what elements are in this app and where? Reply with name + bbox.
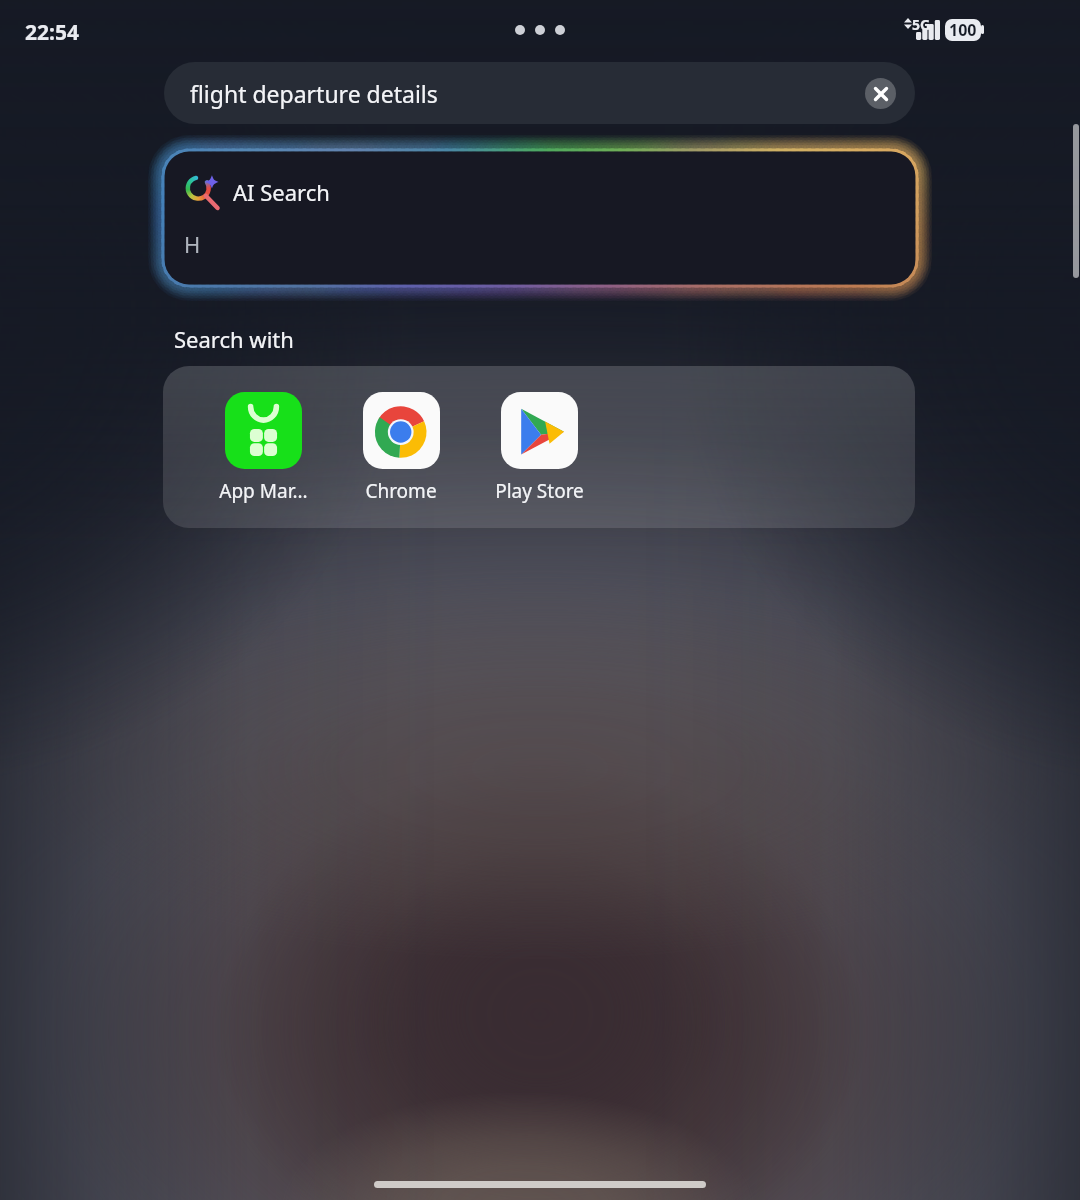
staticText: H bbox=[184, 229, 201, 259]
button[interactable]: flight departure details bbox=[164, 62, 915, 124]
staticText: Chrome bbox=[365, 478, 437, 504]
staticText: 100 bbox=[949, 19, 977, 41]
button[interactable]: Chrome bbox=[332, 392, 470, 504]
button[interactable]: AI Search bbox=[155, 142, 925, 294]
staticText: Search with bbox=[174, 324, 294, 354]
staticText: AI Search bbox=[233, 177, 330, 207]
staticText: App Mar... bbox=[219, 478, 308, 504]
button[interactable]: App Mar... bbox=[194, 392, 332, 504]
staticText: 5G bbox=[912, 15, 931, 34]
staticText: flight departure details bbox=[190, 78, 438, 109]
staticText: Play Store bbox=[495, 478, 584, 504]
button[interactable]: Clear search bbox=[865, 78, 896, 109]
staticText: 22:54 bbox=[25, 18, 79, 47]
button[interactable]: Play Store bbox=[470, 392, 608, 504]
